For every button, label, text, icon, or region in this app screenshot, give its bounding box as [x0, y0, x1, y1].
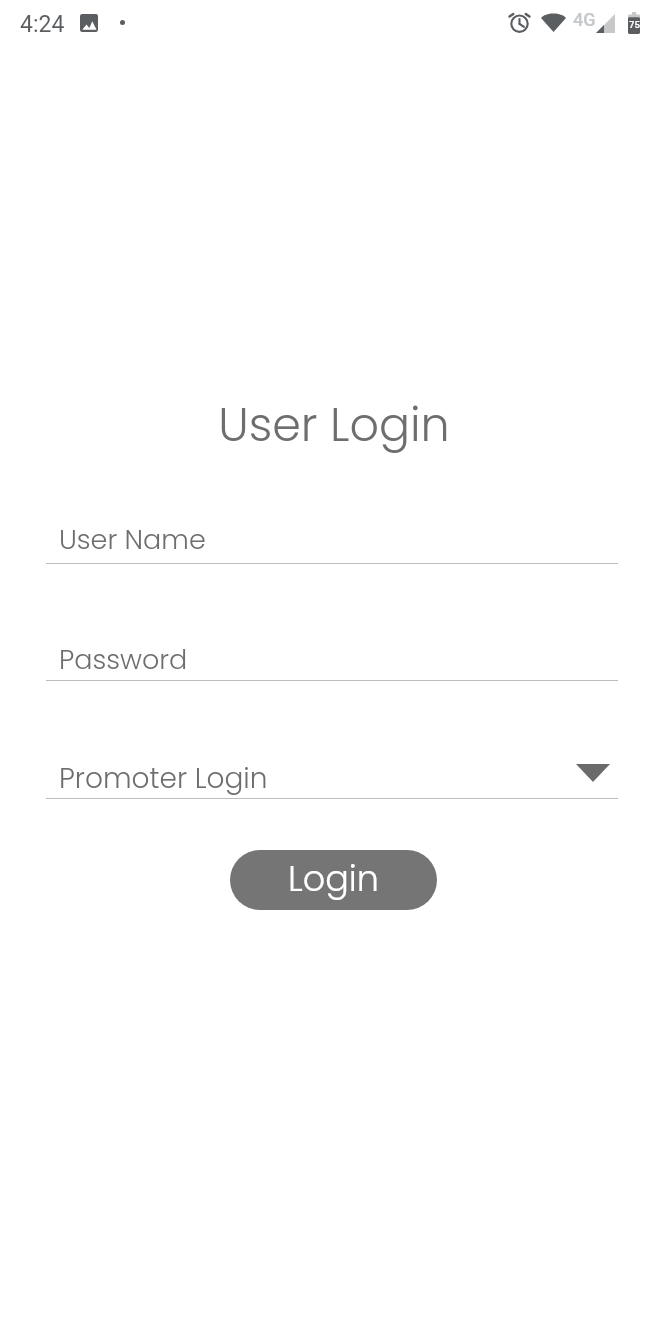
button[interactable]: Login	[230, 850, 437, 910]
button[interactable]: Promoter Login	[46, 748, 618, 799]
button[interactable]: Password	[46, 630, 618, 681]
other: Battery 75 percent	[627, 12, 641, 34]
other: Alarm set	[508, 10, 531, 35]
staticText: Password	[59, 641, 188, 679]
other: Mobile signal	[596, 14, 615, 33]
button[interactable]: Open login type dropdown	[567, 754, 619, 792]
staticText: 4:24	[20, 11, 65, 38]
button[interactable]: User Name	[46, 513, 618, 564]
other: Wi-Fi	[541, 12, 566, 32]
staticText: 4G	[573, 9, 596, 30]
staticText: User Login	[218, 393, 450, 457]
staticText: 75	[629, 19, 640, 30]
staticText: Login	[288, 854, 380, 903]
staticText: Promoter Login	[59, 759, 268, 798]
other: Screenshot	[80, 14, 98, 32]
staticText: User Name	[59, 521, 206, 559]
